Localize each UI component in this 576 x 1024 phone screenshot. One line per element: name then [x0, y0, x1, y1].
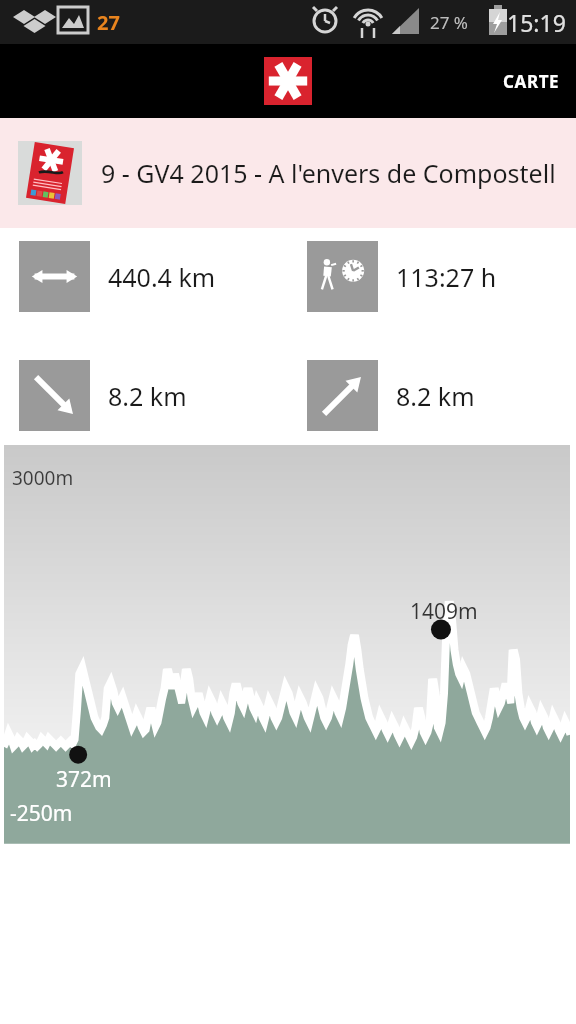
staticText: 8.2 km [396, 379, 475, 413]
staticText: 9 - GV4 2015 - A l'envers de Compostell [101, 156, 556, 190]
staticText: 3000m [12, 465, 74, 491]
staticText: 8.2 km [108, 379, 187, 413]
staticText: -250m [10, 799, 73, 828]
button[interactable]: 9 - GV4 2015 - A l'envers de Compostell [0, 118, 576, 228]
staticText: 113:27 h [396, 260, 497, 294]
staticText: 440.4 km [108, 260, 216, 294]
button[interactable]: CARTE [487, 58, 576, 105]
staticText: 15:19 [507, 7, 566, 38]
staticText: 372m [56, 765, 112, 794]
button[interactable]: 113:27 h [288, 241, 576, 312]
button[interactable]: 440.4 km [0, 241, 288, 312]
button[interactable]: 8.2 km [288, 360, 576, 431]
staticText: 1409m [410, 597, 478, 626]
staticText: 27 % [430, 11, 468, 34]
button[interactable]: Logo [264, 57, 312, 105]
staticText: CARTE [503, 70, 560, 93]
button[interactable]: 8.2 km [0, 360, 288, 431]
staticText: 27 [97, 9, 120, 36]
